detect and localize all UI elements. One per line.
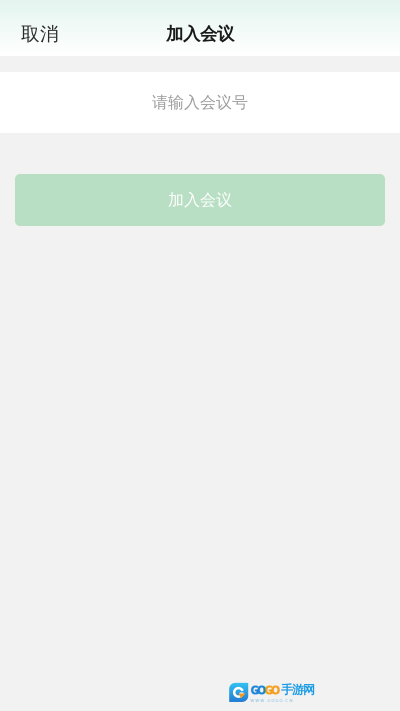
staticText: 取消 (21, 22, 59, 45)
staticText: W W W . G O G O . C N (250, 698, 292, 703)
staticText: GOGO (250, 682, 281, 698)
button[interactable]: 取消 (0, 12, 75, 56)
staticText: 加入会议 (166, 23, 234, 45)
button[interactable]: 加入会议 (15, 174, 385, 226)
button[interactable]: 请输入会议号 (0, 72, 400, 133)
staticText: 手游网 (281, 682, 315, 697)
staticText: 加入会议 (168, 190, 232, 210)
staticText: 请输入会议号 (152, 93, 248, 112)
